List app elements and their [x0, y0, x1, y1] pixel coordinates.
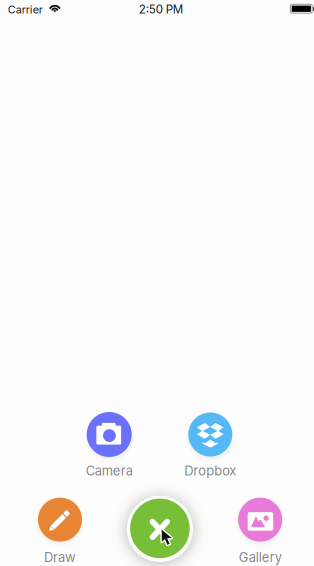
button[interactable]: Dropbox — [171, 410, 249, 480]
staticText: Camera — [86, 463, 133, 479]
staticText: Dropbox — [184, 463, 236, 479]
staticText: Carrier — [8, 3, 43, 16]
staticText: Draw — [44, 549, 76, 565]
staticText: Gallery — [239, 549, 282, 565]
button[interactable]: Draw — [21, 495, 99, 565]
button[interactable]: Gallery — [221, 495, 299, 565]
button[interactable]: Close — [115, 484, 205, 566]
button[interactable]: Camera — [70, 410, 148, 480]
staticText: 2:50 PM — [139, 2, 183, 16]
